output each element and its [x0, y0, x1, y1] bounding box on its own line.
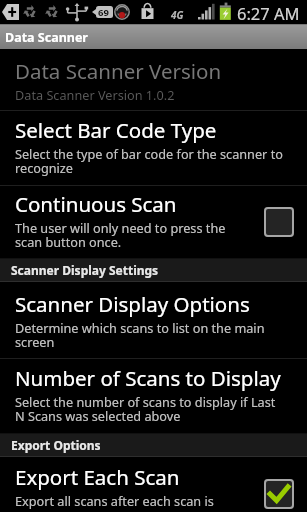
staticText: 4G [171, 8, 184, 22]
staticText: 6:27 AM [237, 2, 300, 24]
staticText: Scanner Display Options [15, 290, 250, 318]
button[interactable]: Select Bar Code Type [0, 111, 307, 185]
staticText: Data Scanner Version [15, 57, 222, 85]
button[interactable]: Continuous Scan [0, 186, 307, 258]
button[interactable]: Checked [264, 479, 294, 509]
button[interactable]: Data Scanner Version [0, 49, 307, 110]
staticText: Select the number of scans to display if… [15, 393, 286, 425]
staticText: Select the type of bar code for the scan… [15, 145, 286, 177]
button[interactable]: Number of Scans to Display [0, 359, 307, 433]
staticText: Continuous Scan [15, 190, 177, 218]
button[interactable]: Unchecked [264, 207, 294, 237]
staticText: 69 [98, 6, 109, 19]
staticText: Number of Scans to Display [15, 364, 281, 392]
staticText: Export all scans after each scan is [15, 492, 214, 509]
button[interactable]: Scanner Display Options [0, 282, 307, 358]
staticText: Determine which scans to list on the mai… [15, 319, 286, 351]
staticText: Export Options [11, 437, 101, 453]
staticText: The user will only need to press the sca… [15, 219, 255, 251]
staticText: Export Each Scan [15, 463, 180, 491]
staticText: Data Scanner Version 1.0.2 [15, 86, 175, 103]
staticText: Select Bar Code Type [15, 116, 217, 144]
staticText: Data Scanner [5, 29, 88, 46]
staticText: Scanner Display Settings [11, 262, 159, 278]
button[interactable]: Export Each Scan [0, 457, 307, 512]
